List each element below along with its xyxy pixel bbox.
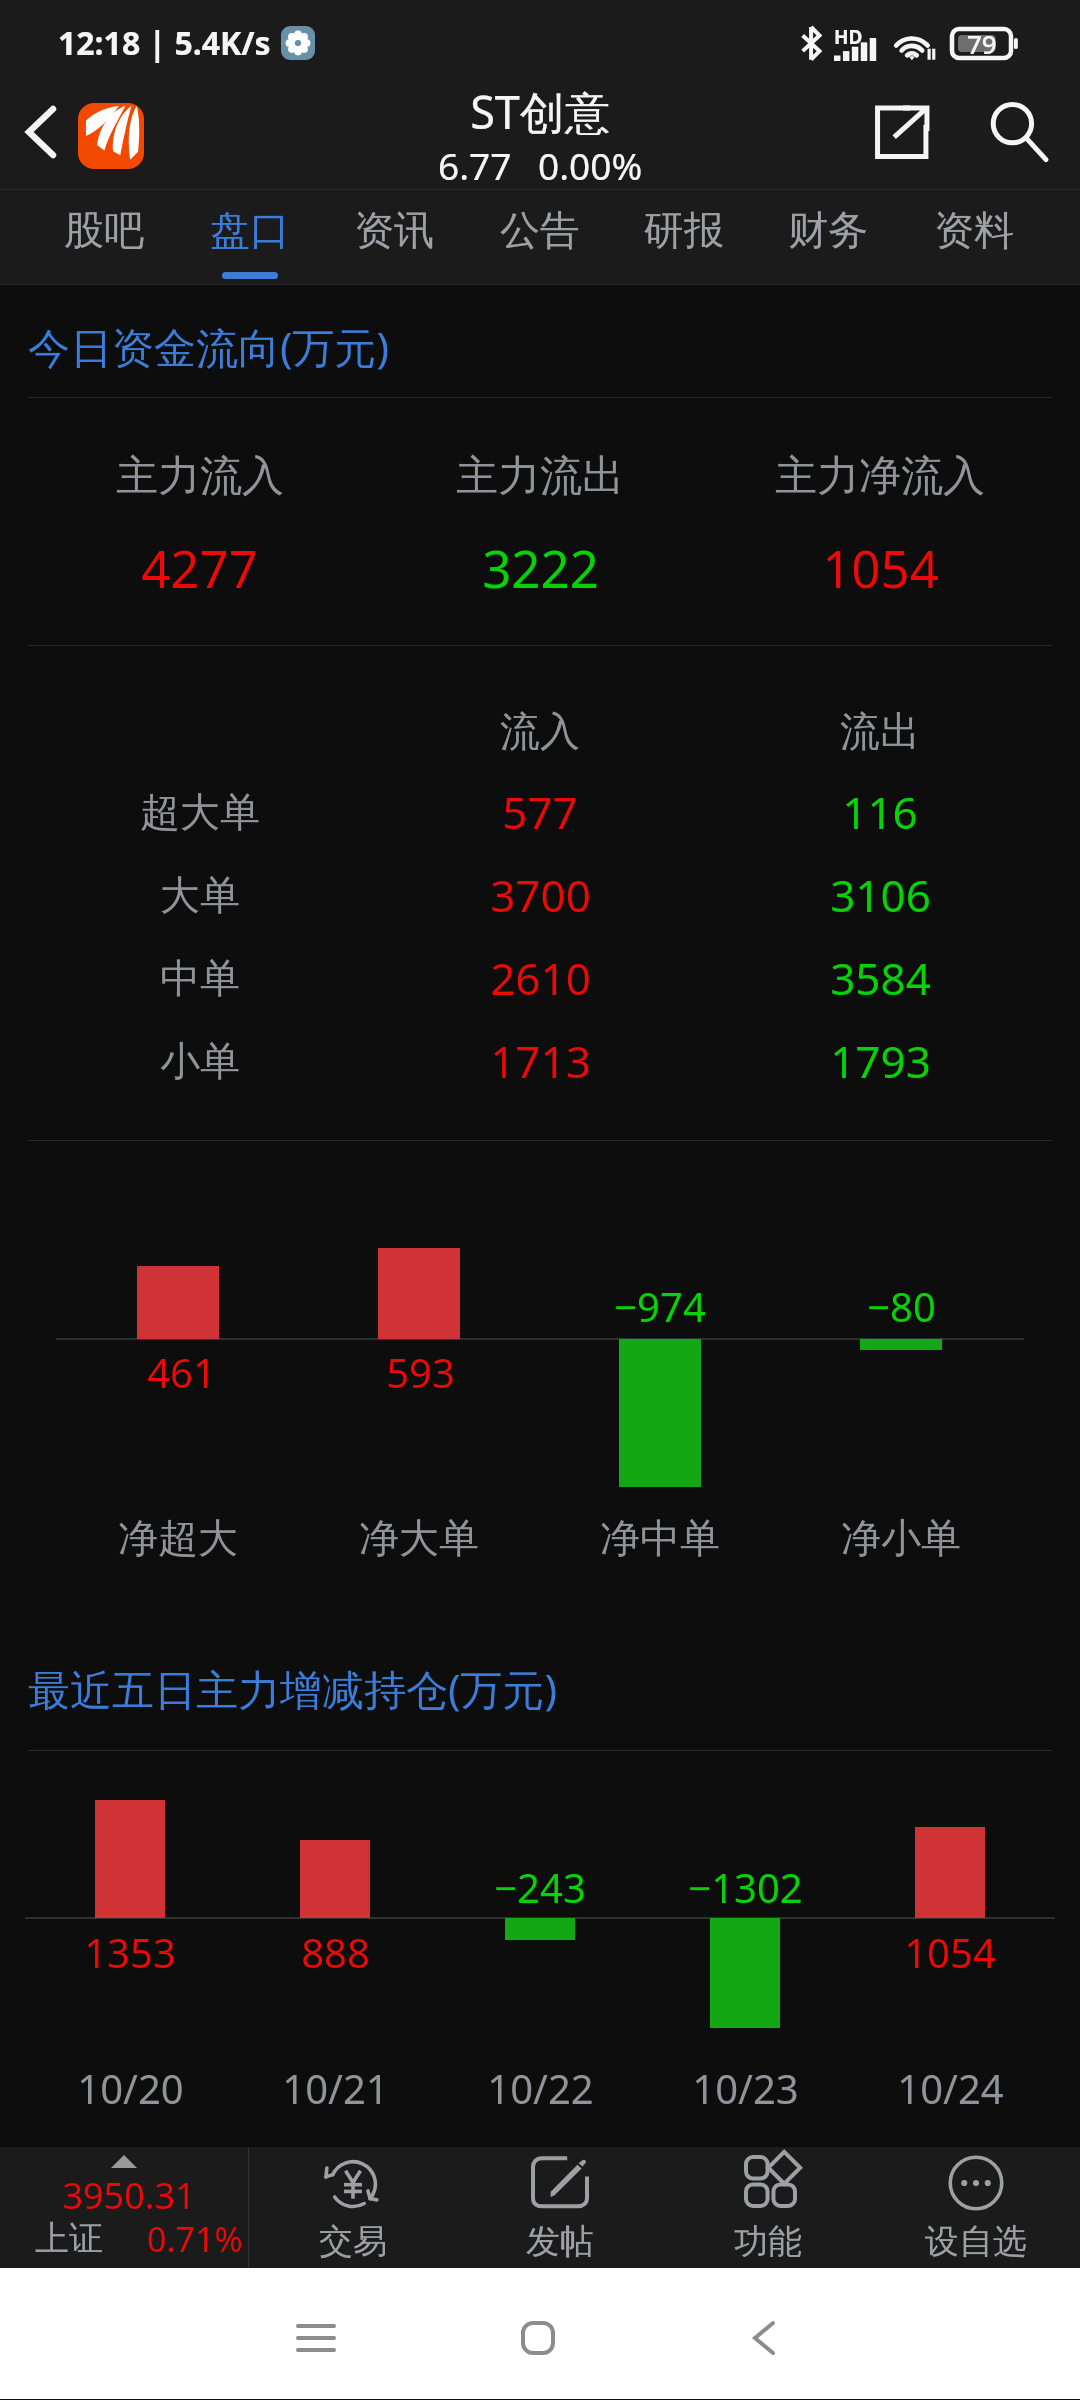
staticText: −974 xyxy=(614,1279,706,1333)
staticText: 0.00% xyxy=(538,140,643,184)
staticText: 3106 xyxy=(830,865,931,925)
staticText: 净大单 xyxy=(359,1513,479,1563)
button[interactable]: 资讯 xyxy=(324,190,464,285)
button[interactable]: Home xyxy=(490,2290,586,2386)
button[interactable]: Share xyxy=(854,84,950,180)
button[interactable]: 功能 xyxy=(664,2147,872,2268)
staticText: 主力流出 xyxy=(456,450,624,503)
staticText: 577 xyxy=(502,782,578,842)
staticText: 461 xyxy=(147,1345,216,1399)
button[interactable]: Search xyxy=(971,84,1067,180)
staticText: 1054 xyxy=(904,1925,996,1979)
staticText: 流出 xyxy=(840,706,920,756)
button[interactable]: 发帖 xyxy=(456,2147,664,2268)
staticText: 大单 xyxy=(160,870,240,920)
staticText: 3584 xyxy=(830,948,931,1008)
staticText: 发帖 xyxy=(526,2220,594,2260)
button[interactable]: Recent apps xyxy=(268,2290,364,2386)
staticText: 小单 xyxy=(160,1036,240,1086)
staticText: 主力净流入 xyxy=(775,450,985,503)
button[interactable]: 财务 xyxy=(758,190,898,285)
staticText: 上证 xyxy=(35,2217,103,2260)
button[interactable]: 资料 xyxy=(904,190,1044,285)
staticText: 资讯 xyxy=(354,205,434,255)
staticText: 1793 xyxy=(830,1031,931,1091)
staticText: 今日资金流向(万元) xyxy=(28,318,390,370)
staticText: 设自选 xyxy=(925,2220,1027,2260)
staticText: 盘口 xyxy=(210,205,290,255)
staticText: 流入 xyxy=(500,706,580,756)
staticText: 6.77 xyxy=(438,140,512,184)
staticText: 股吧 xyxy=(64,205,144,255)
staticText: HD xyxy=(834,24,863,50)
staticText: 10/23 xyxy=(692,2061,799,2115)
staticText: 888 xyxy=(301,1925,370,1979)
staticText: 10/22 xyxy=(487,2061,594,2115)
staticText: 超大单 xyxy=(140,787,260,837)
button[interactable]: 股吧 xyxy=(34,190,174,285)
staticText: 交易 xyxy=(319,2220,387,2260)
staticText: 4277 xyxy=(141,533,258,602)
staticText: 3222 xyxy=(482,533,599,602)
staticText: 1054 xyxy=(822,533,939,602)
staticText: 净中单 xyxy=(600,1513,720,1563)
staticText: 10/24 xyxy=(897,2061,1004,2115)
button[interactable]: Back xyxy=(716,2290,812,2386)
staticText: 中单 xyxy=(160,953,240,1003)
staticText: 10/20 xyxy=(77,2061,184,2115)
staticText: 10/21 xyxy=(282,2061,389,2115)
button[interactable]: 研报 xyxy=(614,190,754,285)
button[interactable]: 设自选 xyxy=(872,2147,1080,2268)
staticText: 财务 xyxy=(788,205,868,255)
staticText: 净超大 xyxy=(118,1513,238,1563)
staticText: −1302 xyxy=(688,1860,803,1914)
staticText: 2610 xyxy=(490,948,591,1008)
staticText: 功能 xyxy=(734,2220,802,2260)
staticText: 12:18 | 5.4K/s xyxy=(58,21,271,65)
staticText: 593 xyxy=(386,1345,455,1399)
staticText: 3950.31 xyxy=(62,2171,196,2215)
staticText: 主力流入 xyxy=(116,450,284,503)
staticText: −243 xyxy=(494,1860,586,1914)
staticText: 79 xyxy=(967,26,997,59)
staticText: ST创意 xyxy=(470,81,610,142)
staticText: 0.71% xyxy=(147,2216,243,2260)
staticText: 3700 xyxy=(490,865,591,925)
staticText: 公告 xyxy=(500,205,580,255)
staticText: 最近五日主力增减持仓(万元) xyxy=(28,1660,558,1712)
button[interactable]: 公告 xyxy=(470,190,610,285)
staticText: 116 xyxy=(842,782,918,842)
button[interactable]: 交易 xyxy=(249,2147,456,2268)
button[interactable]: 盘口 xyxy=(180,190,320,285)
button[interactable]: 3950.31 xyxy=(0,2147,248,2268)
staticText: −80 xyxy=(867,1279,936,1333)
staticText: 1713 xyxy=(490,1031,591,1091)
staticText: 研报 xyxy=(644,205,724,255)
button[interactable]: Back xyxy=(3,79,79,185)
staticText: 净小单 xyxy=(841,1513,961,1563)
staticText: 1353 xyxy=(84,1925,176,1979)
button[interactable]: Eastmoney xyxy=(78,103,144,169)
staticText: 资料 xyxy=(934,205,1014,255)
